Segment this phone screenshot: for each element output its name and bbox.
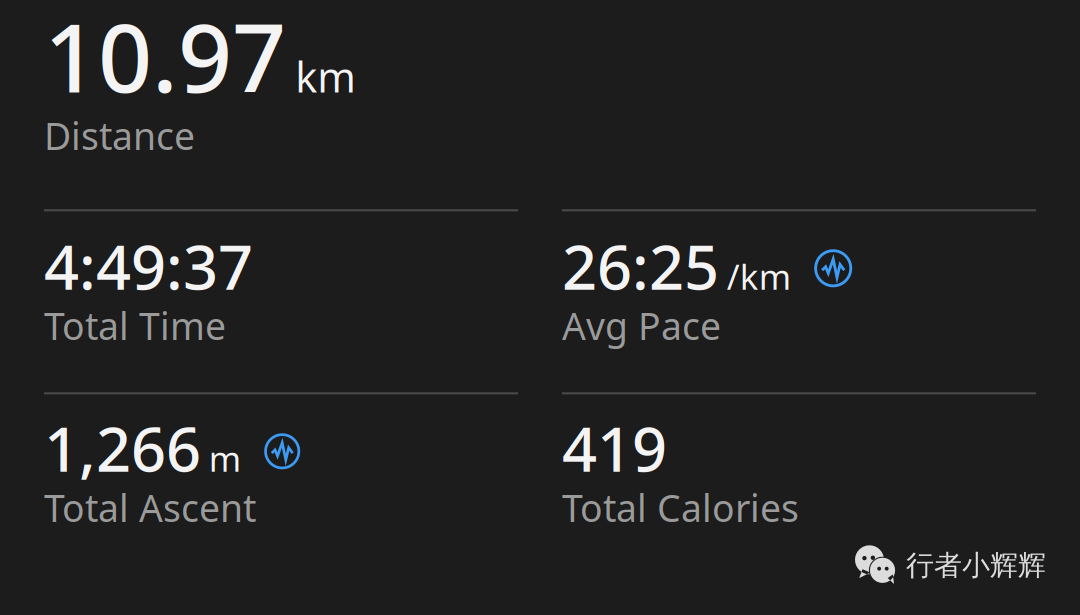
staticText: 行者小辉辉 bbox=[906, 548, 1046, 583]
staticText: 419 bbox=[562, 407, 667, 489]
staticText: 26:25 bbox=[562, 225, 719, 307]
staticText: Total Calories bbox=[562, 483, 799, 532]
button[interactable]: 419 bbox=[562, 407, 1036, 532]
button[interactable]: 10.97 bbox=[44, 0, 1036, 160]
staticText: Total Time bbox=[44, 301, 226, 350]
staticText: Distance bbox=[44, 111, 195, 160]
staticText: 10.97 bbox=[44, 0, 286, 119]
staticText: /km bbox=[727, 253, 791, 299]
button[interactable]: 1,266 bbox=[44, 407, 518, 532]
staticText: 4:49:37 bbox=[44, 225, 253, 307]
staticText: 1,266 bbox=[44, 407, 201, 489]
button[interactable]: 4:49:37 bbox=[44, 225, 518, 350]
staticText: Avg Pace bbox=[562, 301, 721, 350]
staticText: km bbox=[295, 49, 356, 104]
button[interactable]: 26:25 bbox=[562, 225, 1036, 350]
staticText: Total Ascent bbox=[44, 483, 256, 532]
staticText: m bbox=[209, 435, 241, 481]
